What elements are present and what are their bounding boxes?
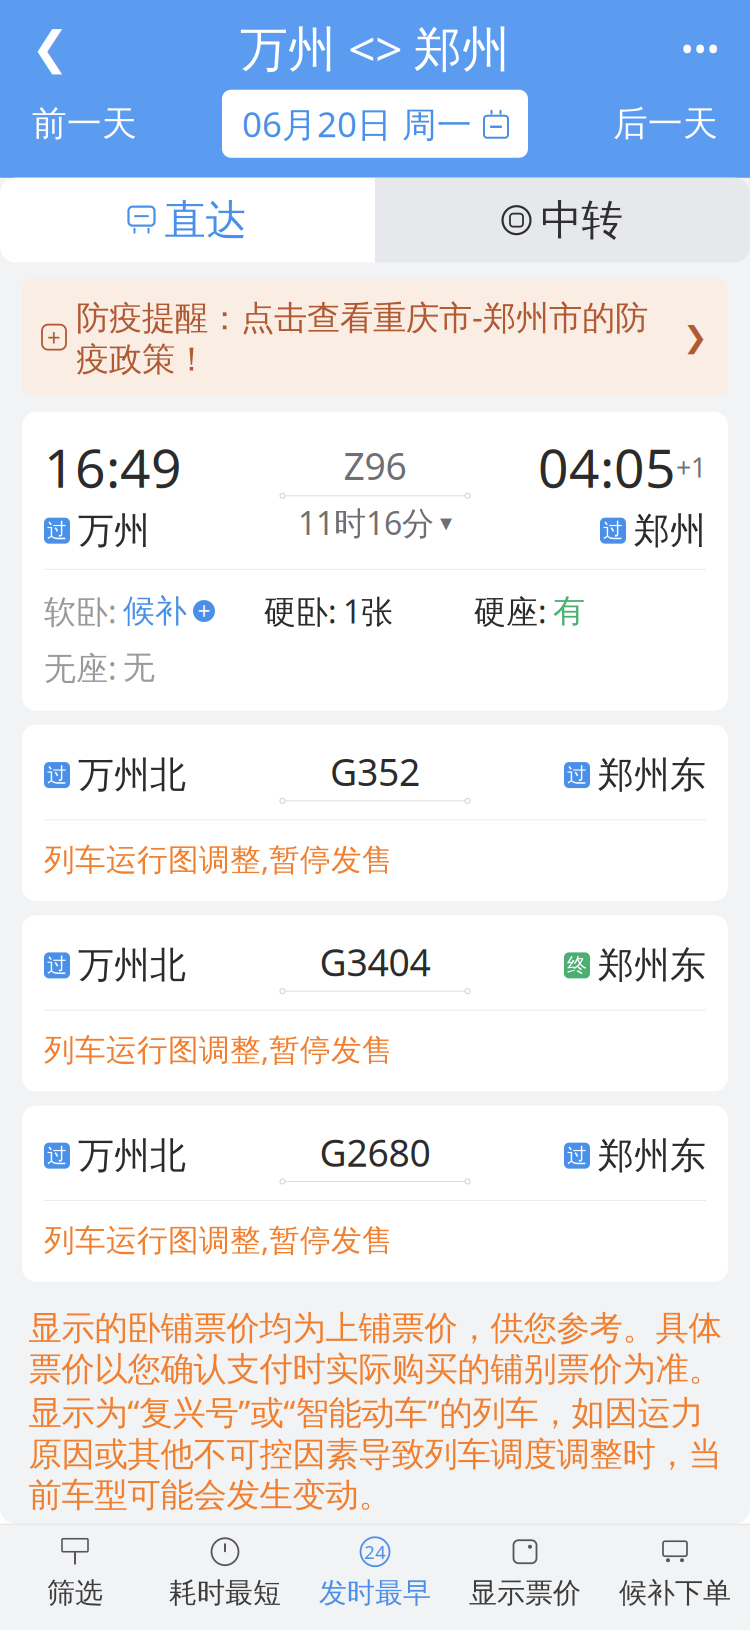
staticText: 直达 (164, 195, 246, 246)
button[interactable]: 筛选 (0, 1525, 150, 1622)
staticText: 过 (567, 1143, 587, 1168)
staticText: 列车运行图调整,暂停发售 (44, 1029, 393, 1069)
staticText: 终 (567, 953, 587, 978)
staticText: 11时16分 (298, 501, 434, 544)
button[interactable]: 过 (22, 915, 728, 1091)
staticText: 过 (603, 518, 623, 543)
staticText: 万州北 (78, 753, 186, 797)
staticText: G352 (330, 747, 420, 796)
button[interactable]: 耗时最短 (150, 1525, 300, 1622)
staticText: 硬卧: (264, 590, 337, 632)
staticText: 防疫提醒：点击查看重庆市-郑州市的防疫政策！ (76, 294, 648, 380)
button[interactable]: 06月20日 周一 (222, 90, 528, 158)
button[interactable]: 候补下单 (600, 1525, 750, 1622)
staticText: + (47, 321, 61, 353)
staticText: + (197, 596, 210, 626)
staticText: 耗时最短 (169, 1576, 281, 1610)
staticText: ••• (680, 25, 719, 71)
staticText: 04:05 (538, 432, 676, 503)
staticText: 万州 (78, 509, 150, 553)
staticText: 郑州东 (598, 753, 706, 797)
button[interactable]: 直达 (0, 178, 375, 263)
staticText: 06月20日 周一 (242, 101, 472, 147)
staticText: 过 (47, 1143, 67, 1168)
staticText: 24 (364, 1539, 386, 1564)
button[interactable]: 16:49 (22, 412, 728, 711)
staticText: 列车运行图调整,暂停发售 (44, 838, 393, 879)
staticText: 有 (553, 591, 585, 631)
button[interactable]: 过 (22, 1105, 728, 1282)
staticText: 后一天 (613, 102, 718, 145)
staticText: G2680 (319, 1127, 430, 1177)
staticText: 万州北 (78, 1134, 186, 1178)
staticText: 候补下单 (619, 1576, 731, 1610)
staticText: 中转 (540, 195, 622, 246)
button[interactable]: 中转 (375, 178, 750, 263)
button[interactable]: + (22, 278, 728, 396)
staticText: 筛选 (47, 1576, 103, 1610)
staticText: Z96 (343, 441, 406, 490)
staticText: 显示票价 (469, 1576, 581, 1610)
staticText: 过 (567, 763, 587, 787)
staticText: 万州北 (78, 943, 186, 987)
button[interactable]: 前一天 (22, 94, 147, 153)
staticText: 过 (47, 953, 67, 978)
staticText: G3404 (319, 937, 430, 987)
button[interactable]: 显示票价 (450, 1525, 600, 1622)
staticText: ▾ (440, 509, 452, 536)
staticText: 万州 <> 郑州 (240, 16, 510, 80)
staticText: ❮ (31, 22, 69, 74)
staticText: 显示的卧铺票价均为上铺票价，供您参考。具体票价以您确认支付时实际购买的铺别票价为… (28, 1308, 721, 1516)
staticText: 郑州东 (598, 943, 706, 987)
button[interactable]: 过 (22, 725, 728, 901)
staticText: 过 (47, 763, 67, 787)
staticText: 前一天 (32, 102, 137, 145)
staticText: 硬座: (474, 590, 547, 632)
staticText: 1张 (343, 590, 393, 632)
button[interactable]: 返回 (18, 21, 82, 75)
staticText: 郑州东 (598, 1134, 706, 1178)
staticText: 列车运行图调整,暂停发售 (44, 1219, 393, 1260)
staticText: ❯ (683, 320, 708, 354)
staticText: 发时最早 (319, 1576, 431, 1610)
staticText: 无 (123, 648, 155, 687)
button[interactable]: 后一天 (603, 94, 728, 153)
staticText: +1 (676, 449, 706, 485)
button[interactable]: 24 (300, 1525, 450, 1622)
staticText: 无座: (44, 646, 117, 689)
staticText: 过 (47, 518, 67, 543)
staticText: 16:49 (44, 432, 182, 503)
staticText: 候补 (123, 591, 187, 631)
staticText: 郑州 (634, 509, 706, 553)
button[interactable]: 更多 (668, 21, 732, 75)
staticText: 软卧: (44, 590, 117, 632)
